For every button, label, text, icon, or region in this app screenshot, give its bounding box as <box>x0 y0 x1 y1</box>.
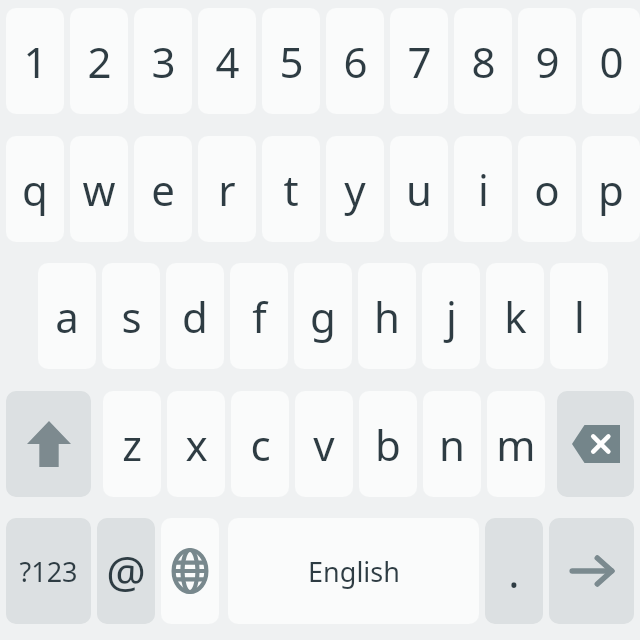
button[interactable]: ?123 <box>6 518 91 624</box>
button[interactable]: Backspace <box>557 391 634 497</box>
button[interactable]: r <box>198 136 256 242</box>
button[interactable]: 6 <box>326 8 384 114</box>
button[interactable]: 4 <box>198 8 256 114</box>
button[interactable]: 8 <box>454 8 512 114</box>
button[interactable]: c <box>231 391 289 497</box>
button[interactable]: i <box>454 136 512 242</box>
staticText: o <box>534 161 560 218</box>
staticText: f <box>252 288 267 345</box>
staticText: w <box>82 161 116 218</box>
button[interactable]: a <box>38 263 96 369</box>
staticText: 3 <box>151 33 176 90</box>
staticText: a <box>55 288 79 345</box>
button[interactable]: v <box>295 391 353 497</box>
staticText: x <box>185 416 208 473</box>
button[interactable]: 9 <box>518 8 576 114</box>
staticText: p <box>598 161 624 218</box>
staticText: 8 <box>471 33 496 90</box>
staticText: s <box>121 288 142 345</box>
staticText: q <box>22 161 48 218</box>
staticText: 0 <box>599 33 624 90</box>
button[interactable]: 2 <box>70 8 128 114</box>
staticText: v <box>313 416 335 473</box>
staticText: . <box>508 543 520 600</box>
button[interactable]: o <box>518 136 576 242</box>
staticText: 5 <box>279 33 304 90</box>
button[interactable]: l <box>550 263 608 369</box>
staticText: @ <box>106 541 146 601</box>
staticText: 1 <box>23 33 48 90</box>
button[interactable]: t <box>262 136 320 242</box>
button[interactable]: k <box>486 263 544 369</box>
staticText: 2 <box>87 33 112 90</box>
staticText: c <box>250 416 271 473</box>
button[interactable]: x <box>167 391 225 497</box>
staticText: t <box>283 161 299 218</box>
button[interactable]: e <box>134 136 192 242</box>
staticText: i <box>478 161 489 218</box>
button[interactable]: g <box>294 263 352 369</box>
button[interactable]: z <box>103 391 161 497</box>
button[interactable]: u <box>390 136 448 242</box>
button[interactable]: 5 <box>262 8 320 114</box>
staticText: m <box>496 416 536 473</box>
staticText: z <box>122 416 142 473</box>
button[interactable]: y <box>326 136 384 242</box>
button[interactable]: s <box>102 263 160 369</box>
staticText: e <box>151 161 175 218</box>
button[interactable]: q <box>6 136 64 242</box>
staticText: d <box>182 288 208 345</box>
staticText: g <box>310 288 336 345</box>
button[interactable]: n <box>423 391 481 497</box>
button[interactable]: 1 <box>6 8 64 114</box>
button[interactable]: Enter <box>549 518 634 624</box>
staticText: j <box>446 288 457 345</box>
staticText: h <box>374 288 400 345</box>
button[interactable]: @ <box>97 518 155 624</box>
button[interactable]: b <box>359 391 417 497</box>
button[interactable]: h <box>358 263 416 369</box>
staticText: 6 <box>343 33 368 90</box>
staticText: English <box>308 553 400 590</box>
button[interactable]: f <box>230 263 288 369</box>
button[interactable]: 0 <box>582 8 640 114</box>
button[interactable]: j <box>422 263 480 369</box>
button[interactable]: 3 <box>134 8 192 114</box>
button[interactable]: m <box>487 391 545 497</box>
button[interactable]: . <box>485 518 543 624</box>
staticText: 9 <box>535 33 560 90</box>
staticText: l <box>574 288 585 345</box>
button[interactable]: Change language <box>161 518 219 624</box>
button[interactable]: p <box>582 136 640 242</box>
staticText: 4 <box>215 33 240 90</box>
staticText: b <box>375 416 401 473</box>
staticText: y <box>344 161 366 218</box>
button[interactable]: 7 <box>390 8 448 114</box>
staticText: r <box>218 161 236 218</box>
button[interactable]: w <box>70 136 128 242</box>
staticText: n <box>439 416 465 473</box>
staticText: 7 <box>407 33 432 90</box>
staticText: ?123 <box>19 553 78 590</box>
button[interactable]: Shift <box>6 391 91 497</box>
staticText: u <box>406 161 432 218</box>
button[interactable]: d <box>166 263 224 369</box>
staticText: k <box>504 288 527 345</box>
button[interactable]: English <box>228 518 479 624</box>
